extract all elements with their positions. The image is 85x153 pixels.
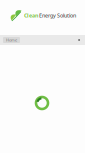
staticText: Energy Solution (38, 12, 76, 19)
staticText: Clean (24, 12, 38, 19)
staticText: Home (6, 37, 17, 43)
button[interactable]: Menu (76, 35, 82, 45)
button[interactable]: Home (3, 37, 20, 43)
